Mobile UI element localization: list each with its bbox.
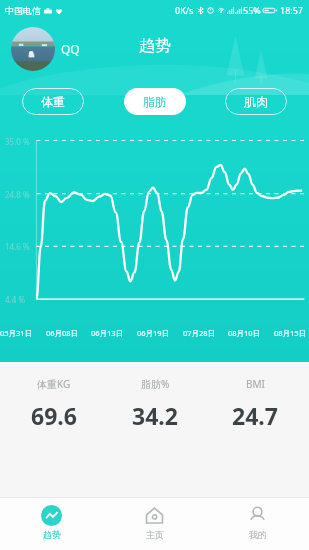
- staticText: 中国电信: [5, 5, 41, 16]
- staticText: 05月31日: [0, 328, 33, 338]
- button[interactable]: 体重: [22, 88, 84, 115]
- button[interactable]: BMI: [209, 377, 301, 431]
- staticText: 体重KG: [37, 377, 71, 391]
- staticText: 4.4 %: [5, 294, 26, 305]
- staticText: 55%: [243, 4, 261, 16]
- staticText: 06月19日: [137, 328, 170, 338]
- staticText: 08月10日: [228, 328, 261, 338]
- staticText: 08月15日: [274, 328, 307, 338]
- other: 我的: [247, 505, 268, 526]
- button[interactable]: 我的: [206, 498, 309, 550]
- other: 趋势: [41, 505, 62, 526]
- staticText: 0K/s: [175, 4, 194, 16]
- other: 主页: [144, 505, 165, 526]
- staticText: 34.2: [132, 400, 178, 431]
- staticText: 24.8 %: [5, 189, 30, 200]
- staticText: QQ: [61, 41, 80, 57]
- staticText: 我的: [249, 529, 267, 540]
- staticText: 体重: [41, 94, 65, 109]
- staticText: 主页: [146, 529, 164, 540]
- button[interactable]: 趋势: [0, 498, 103, 550]
- staticText: 趋势: [43, 529, 61, 540]
- staticText: 07月28日: [183, 328, 216, 338]
- staticText: 06月08日: [46, 328, 79, 338]
- staticText: 69.6: [31, 400, 77, 431]
- button[interactable]: 体重KG: [8, 377, 100, 431]
- staticText: 脂肪: [143, 94, 167, 109]
- staticText: 35.0 %: [5, 136, 30, 147]
- staticText: 24.7: [232, 400, 278, 431]
- staticText: 脂肪%: [141, 377, 170, 391]
- button[interactable]: 肌肉: [225, 88, 287, 115]
- button[interactable]: QQ: [11, 27, 80, 71]
- button[interactable]: 主页: [103, 498, 206, 550]
- staticText: 肌肉: [244, 94, 268, 109]
- staticText: 06月13日: [91, 328, 124, 338]
- staticText: 趋势: [139, 36, 171, 56]
- staticText: BMI: [246, 377, 265, 391]
- button[interactable]: 脂肪%: [109, 377, 201, 431]
- staticText: 14.6 %: [5, 241, 30, 252]
- staticText: 18:57: [280, 4, 304, 16]
- button[interactable]: 脂肪: [124, 88, 186, 115]
